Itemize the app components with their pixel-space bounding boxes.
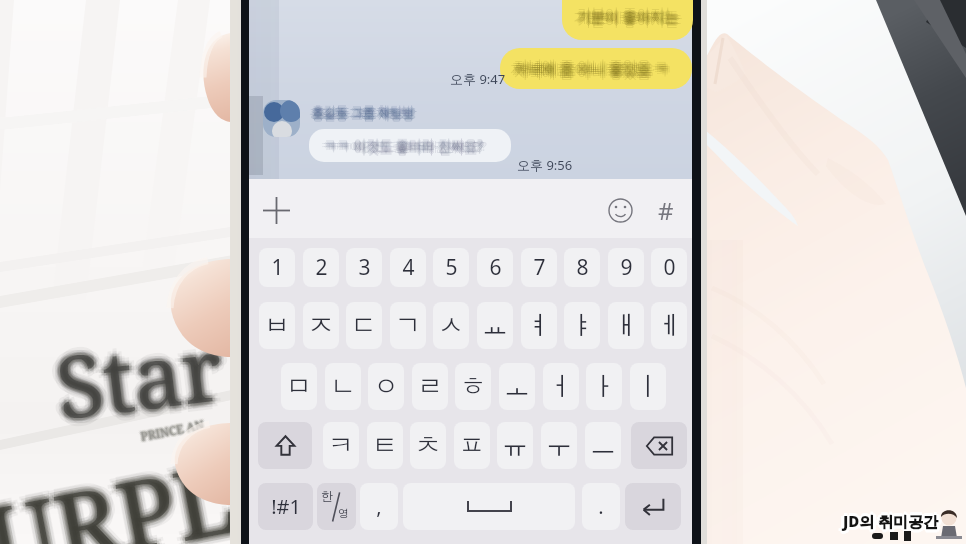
button[interactable]: Emoji	[601, 191, 639, 229]
button[interactable]: ㅜ	[541, 422, 577, 469]
button[interactable]: ,	[360, 483, 398, 530]
staticText: ㅓ	[548, 370, 574, 403]
staticText: URPL	[0, 434, 246, 544]
staticText: JD의 취미공간	[842, 513, 938, 533]
button[interactable]: 3	[346, 248, 382, 287]
button[interactable]: ㅍ	[454, 422, 490, 469]
button[interactable]: ㅅ	[433, 302, 469, 349]
staticText: URPL	[0, 429, 249, 544]
button[interactable]: ㅡ	[585, 422, 621, 469]
staticText: URPL	[0, 437, 246, 544]
button[interactable]: 8	[564, 248, 600, 287]
button[interactable]: ㅊ	[410, 422, 446, 469]
staticText: ㄱ	[395, 309, 421, 342]
button[interactable]: .	[582, 483, 620, 530]
staticText: JD의 취미공간	[842, 510, 938, 530]
staticText: 영	[338, 506, 349, 520]
staticText: Star	[52, 311, 231, 448]
button[interactable]: ㅑ	[564, 302, 600, 349]
button[interactable]: Space	[403, 483, 575, 530]
staticText: 기분이 좋아지는	[576, 8, 678, 27]
staticText: ,	[376, 493, 382, 520]
button[interactable]: ㅐ	[608, 302, 644, 349]
button[interactable]: ㅗ	[499, 363, 535, 410]
button[interactable]: Hashtag	[647, 191, 685, 229]
staticText: URPL	[0, 427, 244, 544]
staticText: URPL	[0, 433, 250, 544]
staticText: Star	[49, 300, 228, 437]
button[interactable]: ㅛ	[477, 302, 513, 349]
button[interactable]: ㅠ	[497, 422, 533, 469]
button[interactable]: Backspace	[631, 422, 687, 469]
staticText: PRINCE AN	[140, 417, 207, 445]
staticText: ㄴ	[330, 370, 356, 403]
staticText: URPL	[0, 432, 246, 544]
staticText: Star	[54, 308, 233, 445]
staticText: ㅋㅋ 이것도 좋더라 진짜요?	[325, 138, 484, 156]
button[interactable]: ㅇ	[368, 363, 404, 410]
button[interactable]: ㅋ	[323, 422, 359, 469]
button[interactable]: 1	[259, 248, 295, 287]
button[interactable]: 5	[433, 248, 469, 287]
button[interactable]: ㅓ	[543, 363, 579, 410]
staticText: ㅁ	[286, 370, 312, 403]
staticText: ㄹ	[417, 370, 443, 403]
staticText: ㅑ	[569, 309, 595, 342]
staticText: JD의 취미공간	[841, 511, 937, 531]
button[interactable]: ㅔ	[651, 302, 687, 349]
button[interactable]: ㄴ	[325, 363, 361, 410]
button[interactable]: Enter	[625, 483, 681, 530]
staticText: 기분이 좋아지는	[576, 6, 678, 25]
staticText: 저녁에 좀 아니 좋았음 ㅋ	[516, 61, 671, 80]
staticText: 기분이 좋아지는	[581, 7, 683, 26]
button[interactable]: ㄱ	[390, 302, 426, 349]
staticText: 기분이 좋아지는	[577, 7, 679, 26]
staticText: PRINCE AN	[137, 416, 204, 444]
staticText: URPL	[0, 425, 242, 544]
staticText: 4	[402, 253, 415, 282]
button[interactable]: !#1	[258, 483, 313, 530]
button[interactable]: ㅕ	[521, 302, 557, 349]
button[interactable]: ㄹ	[412, 363, 448, 410]
button[interactable]: ㅣ	[630, 363, 666, 410]
staticText: URPL	[0, 429, 238, 544]
staticText: .	[598, 493, 604, 520]
button[interactable]: ㅎ	[455, 363, 491, 410]
staticText: URPL	[0, 431, 248, 544]
button[interactable]: ㅌ	[367, 422, 403, 469]
staticText: Star	[44, 303, 223, 440]
staticText: ㅋㅋ 이것도 좋더라 진짜요?	[324, 139, 483, 157]
button[interactable]: 7	[521, 248, 557, 287]
button[interactable]: 4	[390, 248, 426, 287]
button[interactable]: ㅈ	[303, 302, 339, 349]
staticText: Star	[57, 308, 236, 445]
staticText: !#1	[271, 493, 301, 520]
button[interactable]: 6	[477, 248, 513, 287]
staticText: 기분이 좋아지는	[578, 6, 680, 25]
button[interactable]: ㅁ	[281, 363, 317, 410]
staticText: URPL	[0, 423, 240, 544]
staticText: PRINCE AN	[141, 414, 208, 442]
staticText: PRINCE AN	[139, 418, 206, 446]
button[interactable]: 0	[651, 248, 687, 287]
staticText: PRINCE AN	[139, 418, 206, 446]
staticText: 홍길동 그룹 채팅방	[312, 104, 415, 120]
button[interactable]: Add attachment	[257, 191, 295, 229]
staticText: Star	[54, 303, 233, 440]
button[interactable]: Korean English toggle	[317, 483, 356, 530]
button[interactable]: ㅏ	[586, 363, 622, 410]
button[interactable]: 2	[303, 248, 339, 287]
staticText: PRINCE AN	[141, 418, 208, 446]
button[interactable]: ㅂ	[259, 302, 295, 349]
staticText: Star	[52, 308, 231, 445]
button[interactable]: Shift	[258, 422, 312, 469]
button[interactable]: ㄷ	[346, 302, 382, 349]
staticText: ㅂ	[264, 309, 290, 342]
staticText: 저녁에 좀 아니 좋았음 ㅋ	[514, 57, 669, 76]
staticText: PRINCE AN	[139, 417, 206, 445]
staticText: Star	[49, 305, 228, 442]
button[interactable]: 9	[608, 248, 644, 287]
staticText: 홍길동 그룹 채팅방	[313, 103, 416, 119]
staticText: #	[658, 194, 674, 227]
staticText: 홍길동 그룹 채팅방	[312, 102, 415, 118]
